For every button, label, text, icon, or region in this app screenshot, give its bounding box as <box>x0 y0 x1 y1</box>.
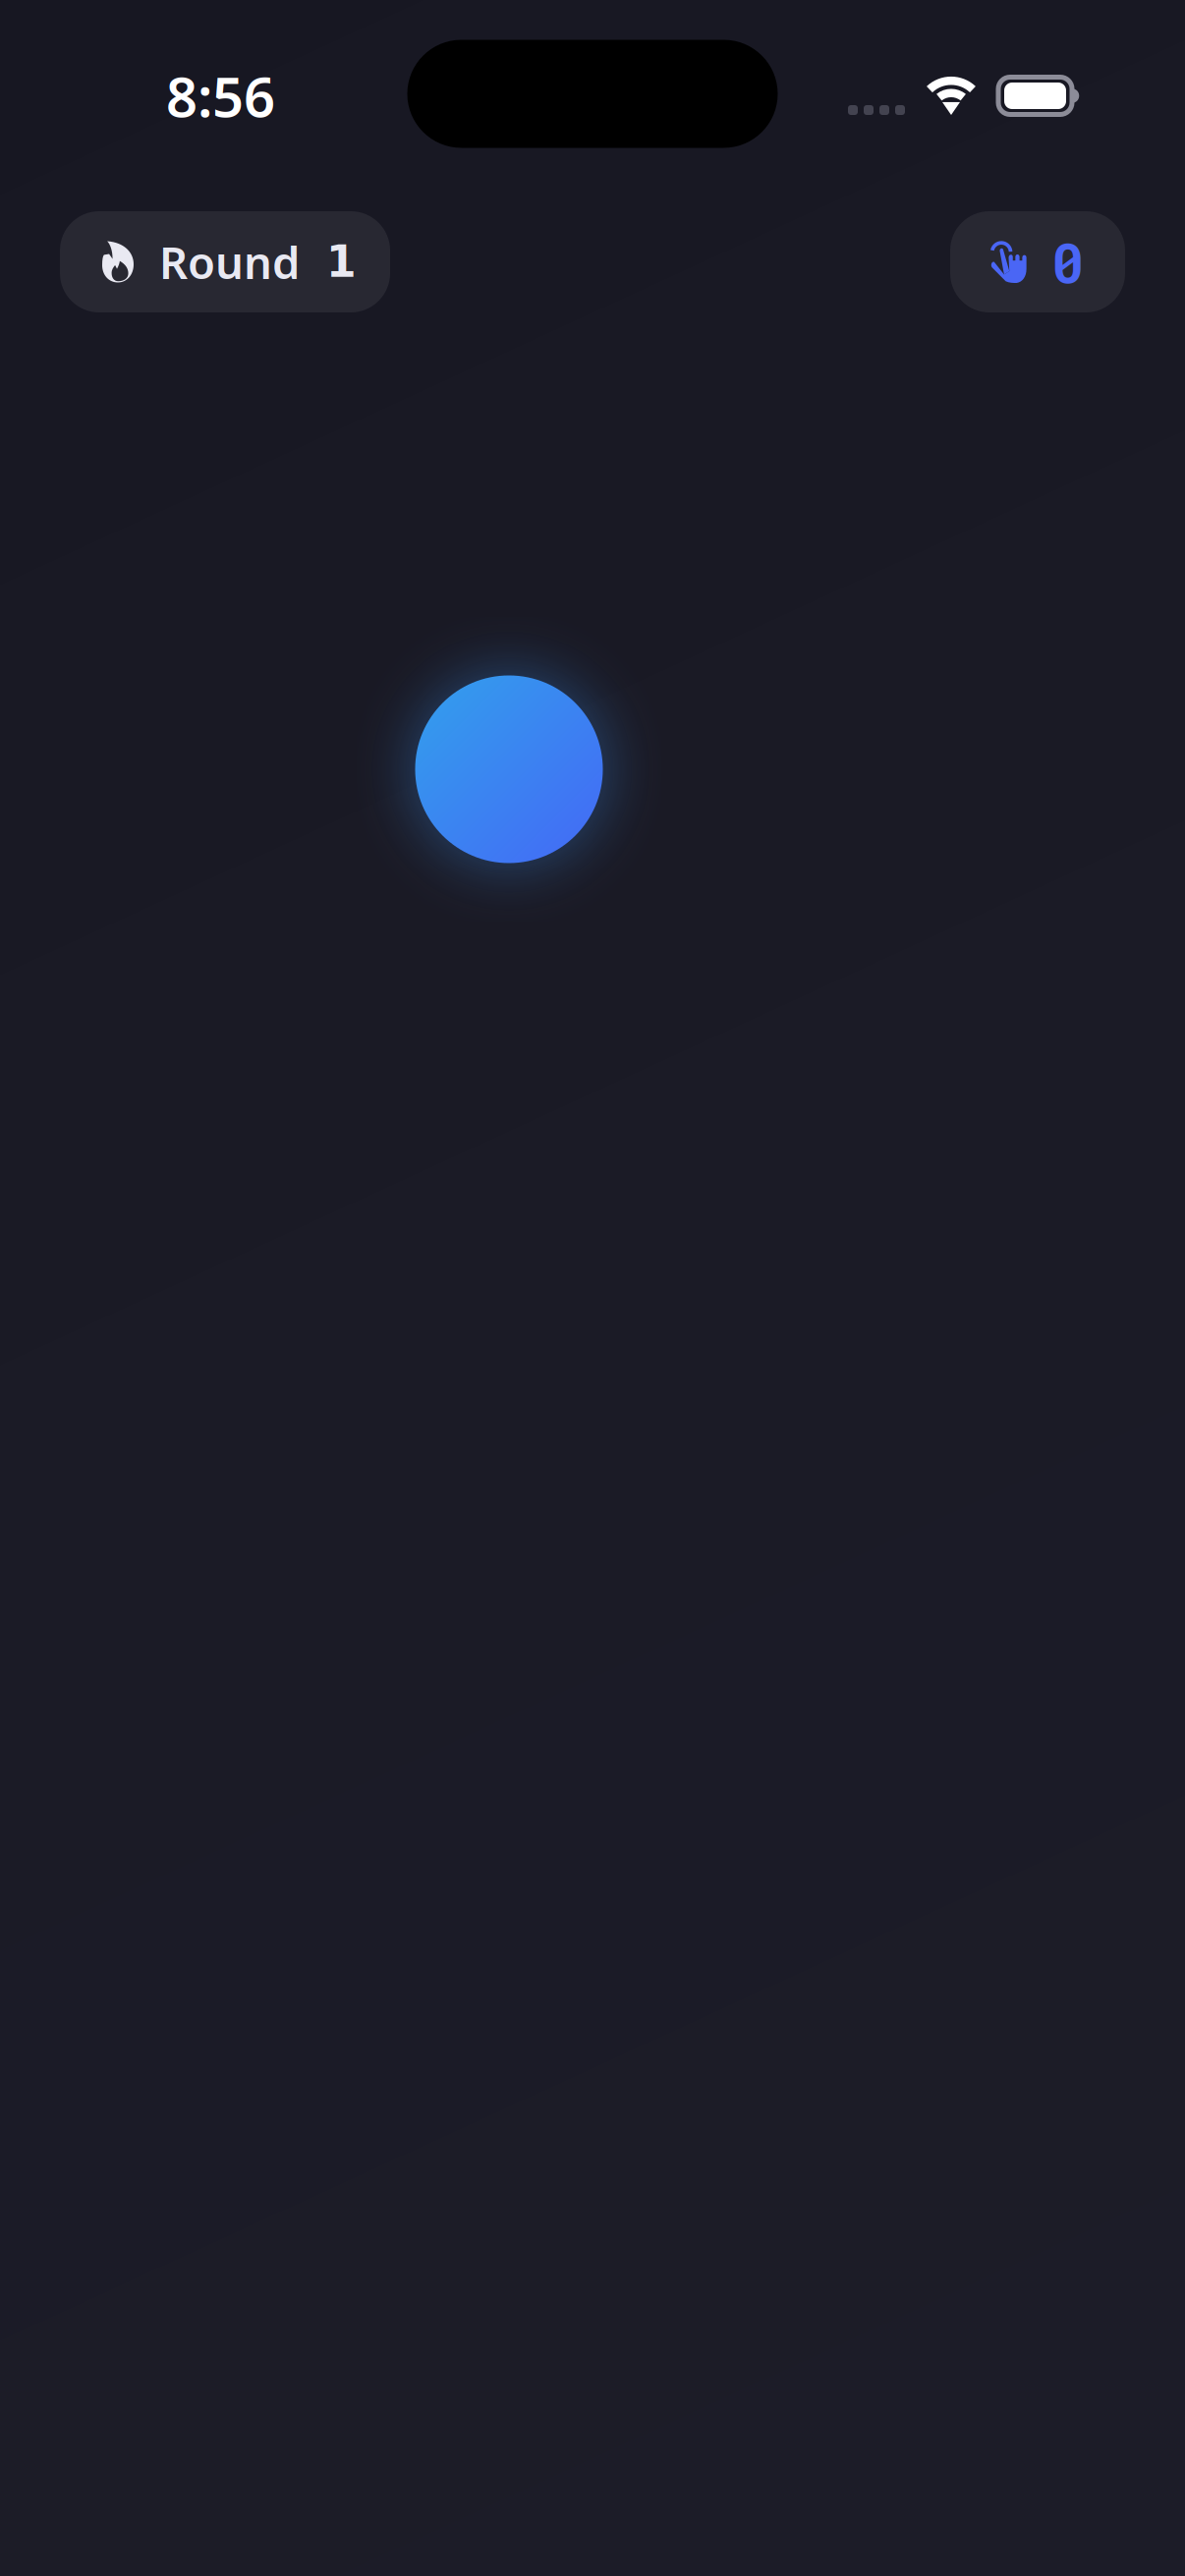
staticText: 0 <box>1051 226 1085 298</box>
staticText: 8:56 <box>166 59 275 132</box>
button[interactable]: Round <box>60 211 390 312</box>
button[interactable]: Taps: 0 <box>950 211 1125 312</box>
staticText: 1 <box>326 237 357 287</box>
button[interactable]: Tap target <box>415 675 603 863</box>
staticText: Round <box>159 232 300 291</box>
